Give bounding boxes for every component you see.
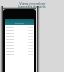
button[interactable] [6,29,33,32]
button[interactable] [6,26,33,29]
button[interactable] [6,47,33,50]
button[interactable] [6,41,33,44]
button[interactable]: Benefits [5,19,34,25]
button[interactable] [6,38,33,41]
button[interactable] [6,32,33,35]
staticText: Benefits [15,21,25,24]
button[interactable] [6,35,33,38]
button[interactable] [6,53,33,56]
button[interactable] [6,50,33,53]
staticText: View member [19,1,46,6]
button[interactable] [6,44,33,47]
staticText: benefit details [18,4,46,9]
